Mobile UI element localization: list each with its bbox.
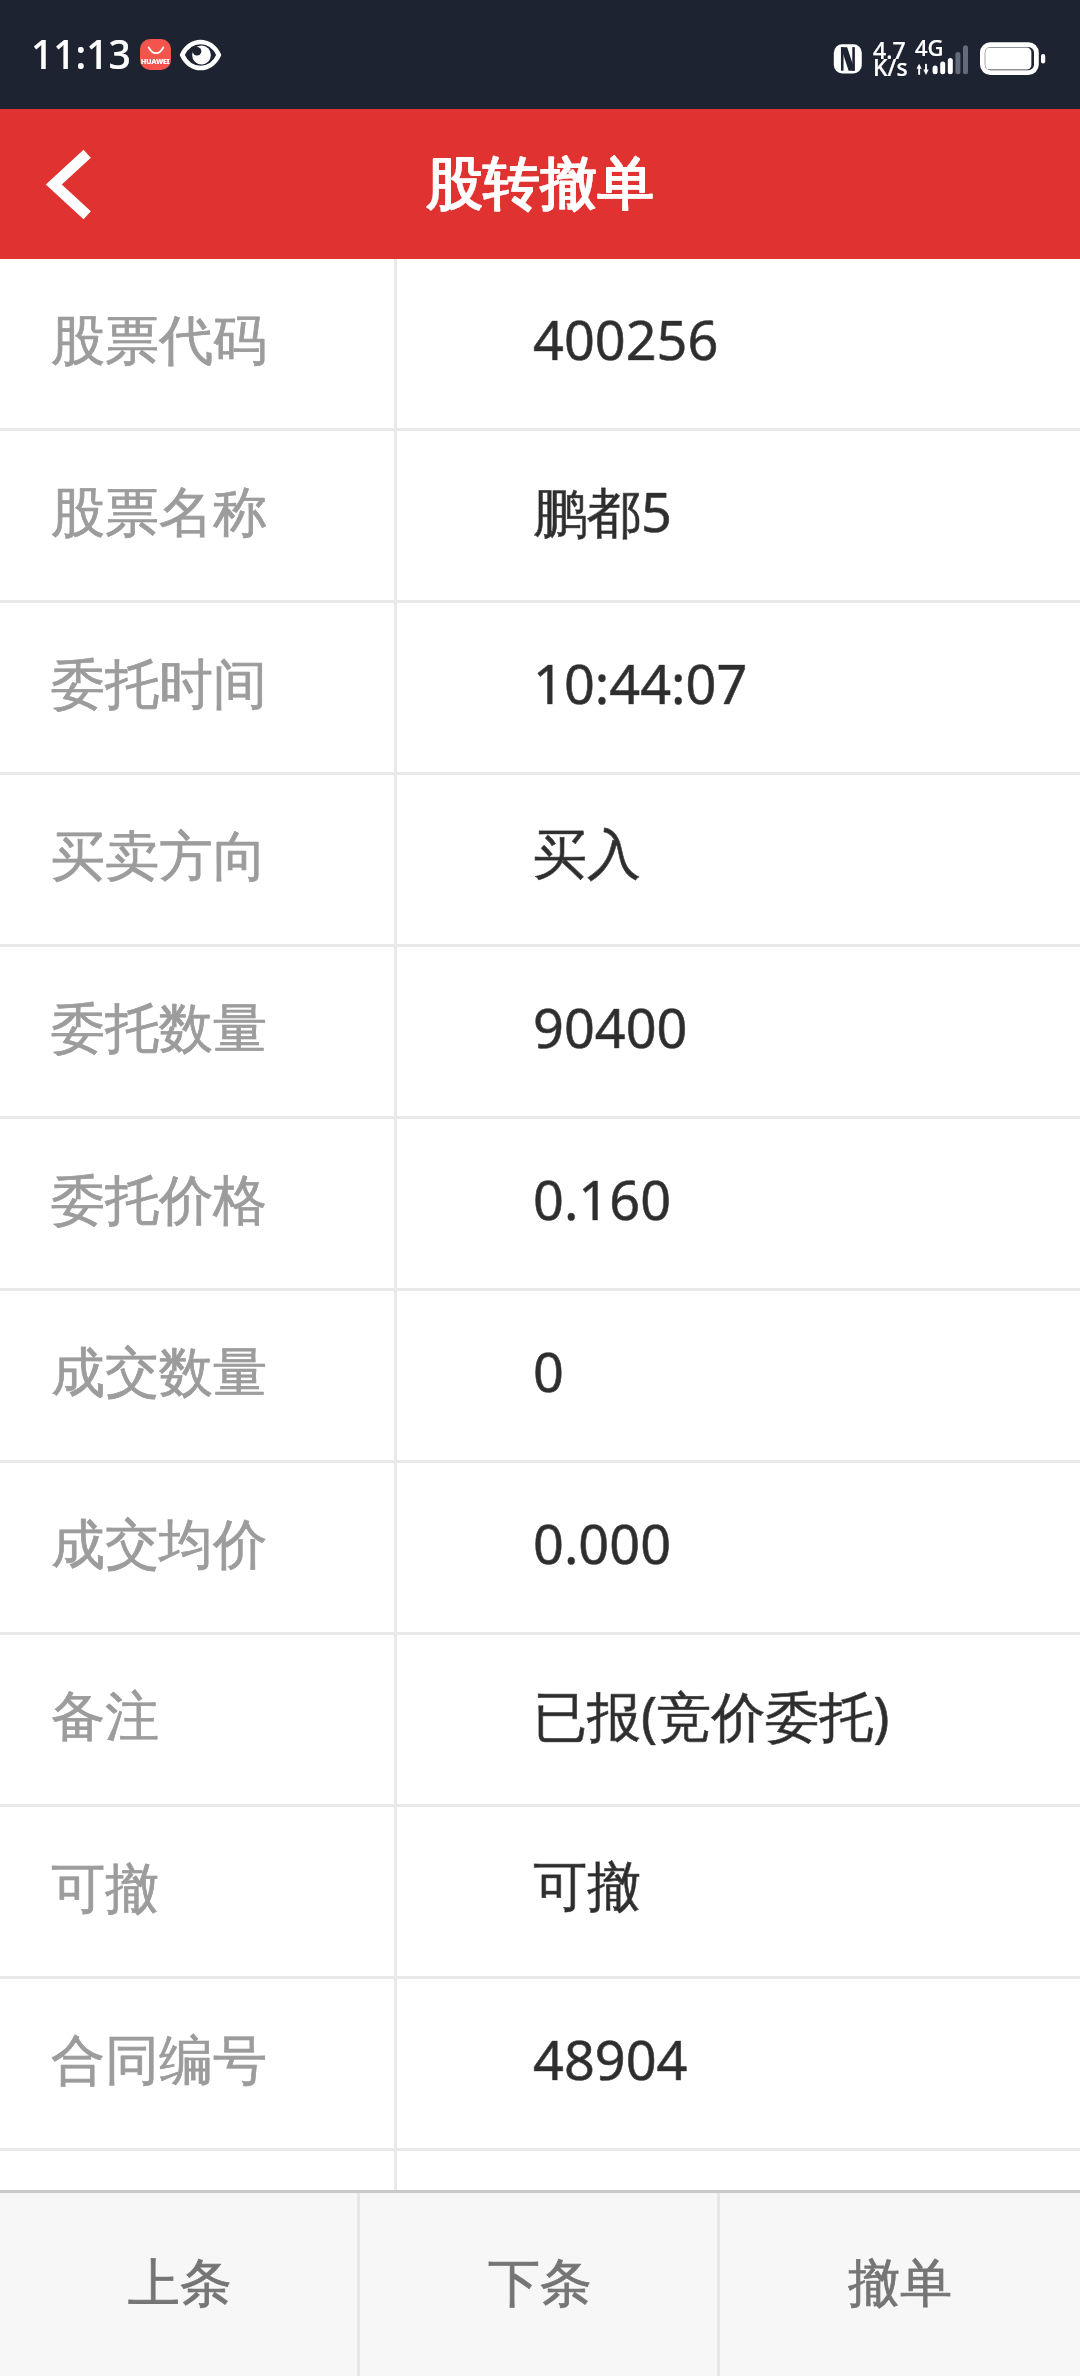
button[interactable]: 委托时间: [0, 603, 1080, 772]
staticText: 股转撤单: [426, 148, 654, 220]
staticText: 买入: [533, 821, 641, 889]
staticText: 0: [533, 1334, 564, 1408]
staticText: 下条: [488, 2251, 592, 2317]
staticText: HUAWEI: [141, 57, 170, 67]
button[interactable]: 股票名称: [0, 431, 1080, 600]
staticText: 股票代码: [51, 307, 267, 375]
staticText: 400256: [533, 302, 719, 376]
staticText: 备注: [51, 1683, 159, 1751]
staticText: 0: [533, 1334, 564, 1408]
staticText: 可撤: [533, 1853, 641, 1921]
staticText: 已报(竞价委托): [533, 1678, 890, 1752]
staticText: 委托时间: [51, 651, 267, 719]
staticText: 委托数量: [51, 995, 267, 1063]
staticText: 买卖方向: [51, 823, 267, 891]
staticText: 已报(竞价委托): [533, 1678, 890, 1752]
staticText: 可撤: [51, 1855, 159, 1923]
staticText: 备注: [51, 1683, 159, 1751]
staticText: 股票代码: [51, 307, 267, 375]
staticText: 400256: [533, 302, 719, 376]
button[interactable]: 备注: [0, 1635, 1080, 1804]
staticText: 合同编号: [51, 2027, 267, 2095]
button[interactable]: 合同编号: [0, 1979, 1080, 2148]
staticText: 合同编号: [51, 2027, 267, 2095]
staticText: 股转撤单: [426, 148, 654, 220]
staticText: 48904: [533, 2022, 688, 2096]
staticText: 委托价格: [51, 1167, 267, 1235]
staticText: 11:13: [31, 27, 131, 80]
staticText: 成交均价: [51, 1511, 267, 1579]
button[interactable]: 成交数量: [0, 1291, 1080, 1460]
button[interactable]: 上条: [0, 2193, 360, 2376]
staticText: 委托时间: [51, 651, 267, 719]
button[interactable]: 股票代码: [0, 259, 1080, 428]
staticText: 撤单: [848, 2251, 952, 2317]
staticText: 48904: [533, 2022, 688, 2096]
button[interactable]: 成交均价: [0, 1463, 1080, 1632]
staticText: 可撤: [533, 1853, 641, 1921]
button[interactable]: Back: [0, 109, 140, 259]
staticText: 鹏都5: [533, 474, 672, 548]
staticText: 0.000: [533, 1506, 672, 1580]
staticText: 90400: [533, 990, 688, 1064]
staticText: 4G: [915, 32, 944, 62]
staticText: 可撤: [51, 1855, 159, 1923]
staticText: 4.7 K/s: [873, 34, 908, 83]
staticText: 委托价格: [51, 1167, 267, 1235]
staticText: 上条: [128, 2251, 232, 2317]
staticText: 0.160: [533, 1162, 672, 1236]
staticText: 10:44:07: [533, 646, 748, 720]
staticText: 成交数量: [51, 1339, 267, 1407]
button[interactable]: 委托价格: [0, 1119, 1080, 1288]
staticText: 成交数量: [51, 1339, 267, 1407]
staticText: 鹏都5: [533, 474, 672, 548]
staticText: 上条: [128, 2251, 232, 2317]
staticText: 0.160: [533, 1162, 672, 1236]
staticText: 成交均价: [51, 1511, 267, 1579]
button[interactable]: 买卖方向: [0, 775, 1080, 944]
button[interactable]: 可撤: [0, 1807, 1080, 1976]
staticText: 买入: [533, 821, 641, 889]
staticText: 委托数量: [51, 995, 267, 1063]
staticText: 10:44:07: [533, 646, 748, 720]
staticText: 撤单: [848, 2251, 952, 2317]
staticText: 下条: [488, 2251, 592, 2317]
staticText: 股票名称: [51, 479, 267, 547]
staticText: 股票名称: [51, 479, 267, 547]
button[interactable]: 下条: [360, 2193, 720, 2376]
staticText: 90400: [533, 990, 688, 1064]
button[interactable]: 委托数量: [0, 947, 1080, 1116]
staticText: 0.000: [533, 1506, 672, 1580]
staticText: 买卖方向: [51, 823, 267, 891]
button[interactable]: 撤单: [720, 2193, 1080, 2376]
